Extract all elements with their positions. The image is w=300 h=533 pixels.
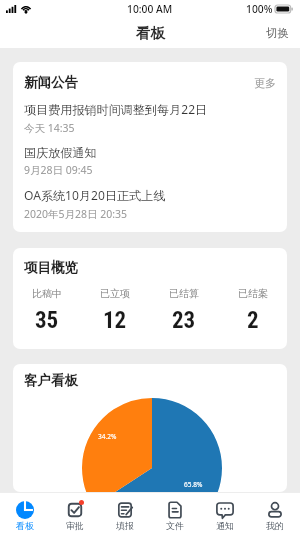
staticText: 文件 <box>166 520 184 531</box>
staticText: 已结算 <box>169 287 199 300</box>
staticText: 我的 <box>266 520 284 531</box>
button[interactable]: 已结案 <box>218 287 287 334</box>
staticText: 10:00 AM <box>127 2 173 16</box>
staticText: 已结案 <box>238 287 268 300</box>
staticText: 65.8% <box>184 480 203 489</box>
button[interactable]: 我的 <box>250 493 300 533</box>
staticText: 2020年5月28日 20:35 <box>24 207 128 221</box>
button[interactable]: 更多 <box>254 76 276 90</box>
button[interactable]: 比稿中 <box>13 287 81 334</box>
staticText: 国庆放假通知 <box>24 145 97 160</box>
staticText: 看板 <box>136 24 165 42</box>
button[interactable]: 已结算 <box>149 287 218 334</box>
button[interactable]: 项目费用报销时间调整到每月22日 <box>13 91 287 135</box>
button[interactable]: 已立项 <box>81 287 149 334</box>
staticText: 新闻公告 <box>24 74 78 91</box>
button[interactable]: 审批 <box>50 493 100 533</box>
staticText: 23 <box>172 307 196 334</box>
staticText: 今天 14:35 <box>24 121 75 135</box>
staticText: 通知 <box>216 520 234 531</box>
button[interactable]: 看板 <box>0 493 50 533</box>
button[interactable]: 填报 <box>100 493 150 533</box>
staticText: 更多 <box>254 76 276 90</box>
staticText: 填报 <box>116 520 134 531</box>
staticText: 项目概览 <box>24 259 78 276</box>
staticText: 切换 <box>266 26 289 40</box>
staticText: 2 <box>247 307 259 334</box>
button[interactable]: 文件 <box>150 493 200 533</box>
button[interactable]: 通知 <box>200 493 250 533</box>
staticText: 客户看板 <box>24 372 78 389</box>
staticText: 项目费用报销时间调整到每月22日 <box>24 101 208 118</box>
staticText: 34.2% <box>98 432 117 441</box>
staticText: 9月28日 09:45 <box>24 163 93 177</box>
staticText: 35 <box>35 307 59 334</box>
button[interactable]: 国庆放假通知 <box>13 135 287 177</box>
staticText: 12 <box>103 307 127 334</box>
button[interactable]: 切换 <box>254 21 300 45</box>
staticText: OA系统10月20日正式上线 <box>24 187 166 204</box>
staticText: 审批 <box>66 520 84 531</box>
staticText: 已立项 <box>100 287 130 300</box>
button[interactable]: OA系统10月20日正式上线 <box>13 177 287 221</box>
staticText: 比稿中 <box>32 287 62 300</box>
staticText: 100% <box>246 2 273 16</box>
staticText: 看板 <box>16 520 34 531</box>
